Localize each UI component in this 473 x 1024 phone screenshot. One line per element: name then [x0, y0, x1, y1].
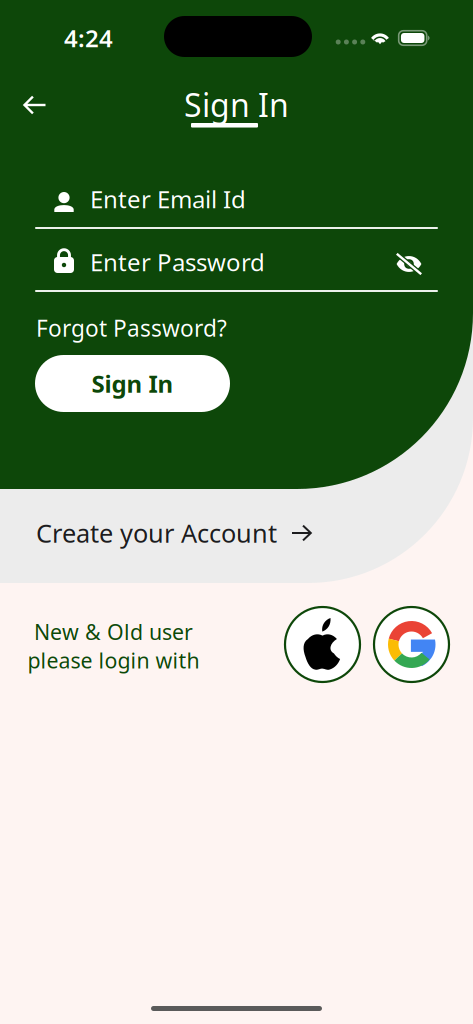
staticText: please login with	[27, 646, 199, 674]
button[interactable]: Create your Account	[36, 511, 366, 555]
staticText: Sign In	[91, 368, 173, 399]
button[interactable]: Enter Email Id	[35, 180, 438, 228]
button[interactable]: Back	[12, 83, 58, 127]
staticText: Sign In	[184, 83, 289, 126]
button[interactable]: Enter Password	[35, 243, 438, 291]
button[interactable]: Forgot Password?	[36, 313, 236, 343]
button[interactable]: Sign In	[35, 355, 230, 412]
button[interactable]: Sign in with Apple	[285, 607, 360, 682]
staticText: Create your Account	[36, 516, 277, 550]
staticText: Enter Password	[90, 246, 265, 278]
staticText: Enter Email Id	[90, 183, 246, 215]
staticText: Forgot Password?	[36, 313, 227, 343]
staticText: New & Old user	[34, 618, 193, 646]
staticText: 4:24	[64, 22, 113, 54]
button[interactable]: Sign in with Google	[374, 607, 449, 682]
